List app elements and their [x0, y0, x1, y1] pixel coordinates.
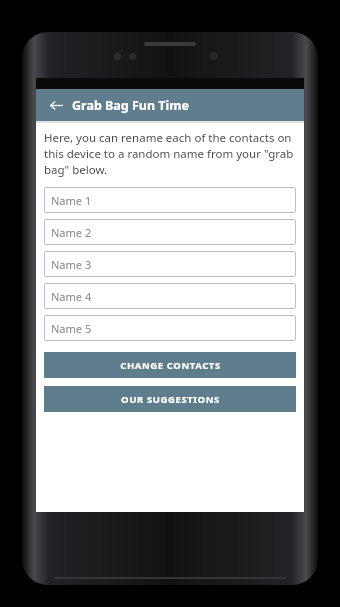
staticText: Name 1	[51, 193, 92, 208]
button[interactable]: OUR SUGGESTIONS	[44, 386, 296, 412]
button[interactable]: CHANGE CONTACTS	[44, 352, 296, 378]
staticText: CHANGE CONTACTS	[120, 359, 221, 372]
staticText: Name 2	[51, 225, 92, 240]
button[interactable]: Name 4	[44, 283, 296, 309]
staticText: Name 3	[51, 257, 92, 272]
button[interactable]: Name 2	[44, 219, 296, 245]
staticText: Grab Bag Fun Time	[72, 97, 189, 114]
staticText: OUR SUGGESTIONS	[121, 393, 220, 406]
staticText: Here, you can rename each of the contact…	[44, 130, 296, 178]
staticText: Name 5	[51, 321, 92, 336]
button[interactable]: Name 3	[44, 251, 296, 277]
staticText: Name 4	[51, 289, 92, 304]
button[interactable]: Name 1	[44, 187, 296, 213]
button[interactable]: Navigate up	[43, 92, 69, 118]
button[interactable]: Name 5	[44, 315, 296, 341]
